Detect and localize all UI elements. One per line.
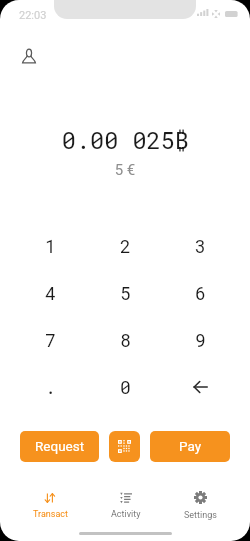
- button[interactable]: 3: [163, 222, 238, 269]
- button[interactable]: 2: [88, 222, 163, 269]
- staticText: Request: [35, 438, 85, 454]
- staticText: Transact: [33, 509, 68, 520]
- staticText: 0: [120, 375, 131, 399]
- staticText: 1: [45, 234, 56, 258]
- button[interactable]: 8: [88, 316, 163, 363]
- button[interactable]: Backspace: [163, 363, 238, 410]
- staticText: 3: [195, 234, 206, 258]
- button[interactable]: 9: [163, 316, 238, 363]
- button[interactable]: Pay: [150, 431, 230, 462]
- staticText: 7: [45, 328, 56, 352]
- staticText: Settings: [184, 510, 217, 521]
- other: Backspace: [193, 381, 208, 393]
- button[interactable]: 4: [12, 269, 88, 316]
- button[interactable]: Request: [20, 431, 99, 462]
- staticText: 6: [195, 281, 206, 305]
- staticText: 5: [120, 281, 131, 305]
- staticText: 4: [45, 281, 56, 305]
- staticText: .: [45, 375, 56, 399]
- staticText: 5 €: [0, 161, 250, 179]
- staticText: Pay: [179, 438, 202, 454]
- staticText: 9: [195, 328, 206, 352]
- button[interactable]: Settings: [163, 483, 238, 529]
- button[interactable]: 6: [163, 269, 238, 316]
- button[interactable]: .: [12, 363, 88, 410]
- button[interactable]: 1: [12, 222, 88, 269]
- button[interactable]: Transact: [12, 483, 88, 529]
- staticText: 8: [120, 328, 131, 352]
- button[interactable]: 5: [88, 269, 163, 316]
- staticText: 2: [120, 234, 131, 258]
- button[interactable]: 0: [88, 363, 163, 410]
- button[interactable]: 7: [12, 316, 88, 363]
- button[interactable]: Activity: [88, 483, 163, 529]
- button[interactable]: Scan QR code: [109, 431, 140, 462]
- staticText: 22:03: [19, 9, 47, 22]
- staticText: Activity: [111, 509, 141, 520]
- button[interactable]: Account: [17, 43, 41, 67]
- staticText: 0.00 025₿: [0, 124, 250, 156]
